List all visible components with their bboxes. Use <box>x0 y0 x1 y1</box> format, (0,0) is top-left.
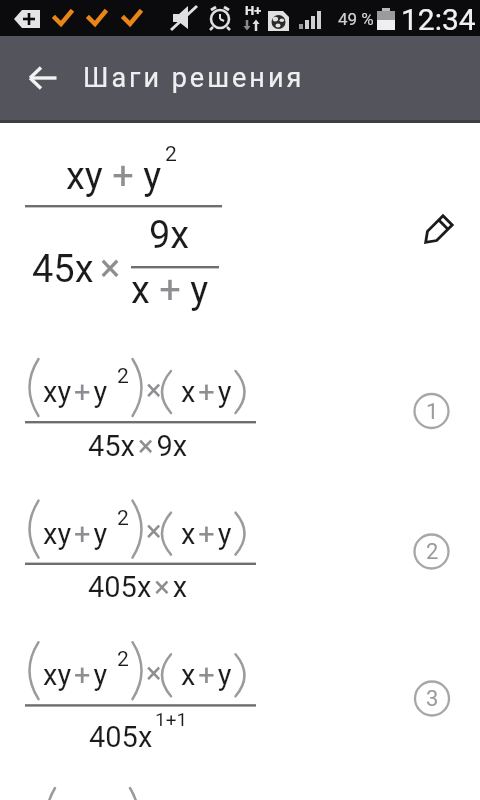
button[interactable] <box>413 207 461 255</box>
staticText: x + y <box>181 517 232 551</box>
staticText: 2 <box>117 506 129 531</box>
staticText: 2 <box>165 142 177 167</box>
staticText: × <box>100 246 121 291</box>
button[interactable] <box>0 633 480 753</box>
staticText: 2 <box>426 539 439 565</box>
staticText: 2 <box>117 647 129 672</box>
staticText: × <box>146 514 162 548</box>
staticText: 3 <box>426 686 439 712</box>
staticText: 1 <box>426 399 439 425</box>
staticText: Шаги решения <box>83 62 305 94</box>
staticText: xy + y <box>43 658 108 692</box>
staticText: xy + y <box>43 375 108 409</box>
button[interactable] <box>0 492 480 612</box>
staticText: x + y <box>181 375 232 409</box>
staticText: 9x <box>149 213 190 258</box>
staticText: 405x × x <box>88 570 188 604</box>
staticText: × <box>146 373 162 407</box>
staticText: 405x <box>89 720 153 754</box>
staticText: 49 % <box>338 9 374 29</box>
button[interactable] <box>18 53 68 103</box>
staticText: 2 <box>117 364 129 389</box>
staticText: 45x × 9x <box>88 429 188 463</box>
staticText: H+ <box>245 3 262 18</box>
staticText: x + y <box>181 658 232 692</box>
staticText: x + y <box>131 268 209 313</box>
staticText: xy + y <box>43 517 108 551</box>
staticText: × <box>146 656 162 690</box>
button[interactable] <box>0 350 480 470</box>
staticText: xy + y <box>66 154 162 199</box>
staticText: 45x <box>32 247 94 292</box>
staticText: 1+1 <box>155 708 188 730</box>
staticText: 12:34 <box>401 2 476 37</box>
